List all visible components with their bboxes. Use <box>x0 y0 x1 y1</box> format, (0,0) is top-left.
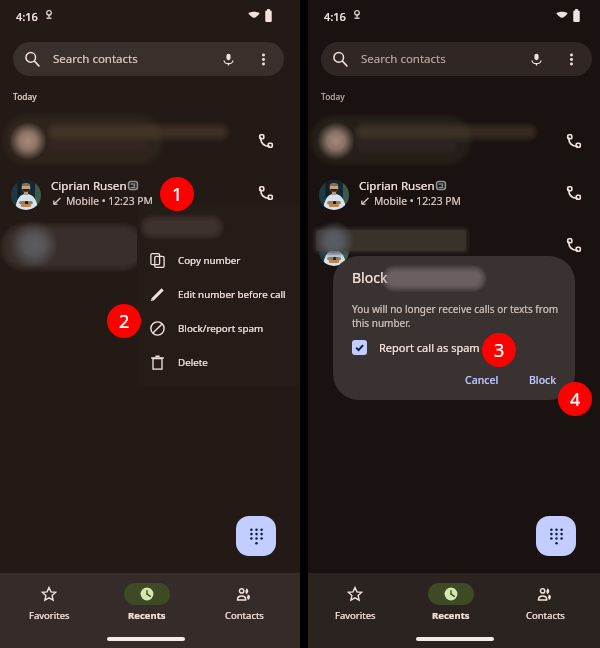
button[interactable]: Favorites <box>323 583 387 622</box>
staticText: Report call as spam <box>379 340 480 355</box>
button[interactable]: Dialpad <box>236 516 276 556</box>
button[interactable]: Call <box>0 219 300 271</box>
button[interactable]: Call <box>561 180 587 206</box>
staticText: Today <box>13 91 37 102</box>
button[interactable]: Ciprian Rusen <box>308 167 600 219</box>
staticText: 4:16 <box>16 9 38 24</box>
button[interactable]: Block/report spam <box>137 311 300 345</box>
button[interactable]: Recents <box>115 583 179 622</box>
staticText: Search contacts <box>53 51 138 67</box>
button[interactable]: Dialpad <box>536 516 576 556</box>
button[interactable]: Contacts <box>513 583 577 622</box>
button[interactable]: Ciprian Rusen <box>0 167 300 219</box>
staticText: 4 <box>570 387 581 412</box>
button[interactable]: Edit number before call <box>137 277 300 311</box>
staticText: Favorites <box>29 609 70 622</box>
button[interactable]: Block <box>525 370 561 390</box>
staticText: Delete <box>178 356 208 369</box>
staticText: 2 <box>119 309 130 334</box>
button[interactable]: Search contacts <box>321 42 592 76</box>
staticText: Block <box>352 268 388 287</box>
staticText: Contacts <box>526 609 565 622</box>
staticText: 1 <box>172 182 183 207</box>
staticText: Mobile • 12:23 PM <box>66 194 153 208</box>
staticText: this number. <box>352 316 411 330</box>
button[interactable]: Search contacts <box>13 42 284 76</box>
button[interactable]: Call <box>561 232 587 258</box>
staticText: Block/report spam <box>178 322 264 335</box>
button[interactable]: Contacts <box>212 583 276 622</box>
staticText: Favorites <box>335 609 376 622</box>
button[interactable]: Call <box>253 180 279 206</box>
button[interactable]: Cancel <box>461 370 503 390</box>
staticText: Ciprian Rusen <box>51 178 127 194</box>
staticText: 3 <box>494 338 505 363</box>
button[interactable]: Call <box>0 115 300 167</box>
staticText: You will no longer receive calls or text… <box>352 302 559 316</box>
staticText: Ciprian Rusen <box>359 178 435 194</box>
button[interactable]: Call <box>308 115 600 167</box>
button[interactable]: More options <box>559 47 583 71</box>
button[interactable]: Voice search <box>216 47 240 71</box>
staticText: Edit number before call <box>178 288 286 301</box>
staticText: Contacts <box>225 609 264 622</box>
button[interactable]: Delete <box>137 345 300 379</box>
staticText: Block <box>529 373 557 387</box>
staticText: Recents <box>432 609 470 622</box>
button[interactable]: Favorites <box>17 583 81 622</box>
button[interactable]: Copy number <box>137 243 300 277</box>
staticText: Today <box>321 91 345 102</box>
staticText: Search contacts <box>361 51 446 67</box>
staticText: Recents <box>128 609 166 622</box>
staticText: Mobile • 12:23 PM <box>374 194 461 208</box>
button[interactable]: Call <box>308 219 600 271</box>
staticText: Copy number <box>178 254 241 267</box>
button[interactable]: Recents <box>419 583 483 622</box>
button[interactable]: Report call as spam <box>352 340 480 355</box>
button[interactable]: More options <box>251 47 275 71</box>
staticText: Cancel <box>465 373 499 387</box>
button[interactable]: Call <box>253 128 279 154</box>
button[interactable]: Voice search <box>524 47 548 71</box>
button[interactable]: Call <box>561 128 587 154</box>
staticText: 4:16 <box>324 9 346 24</box>
